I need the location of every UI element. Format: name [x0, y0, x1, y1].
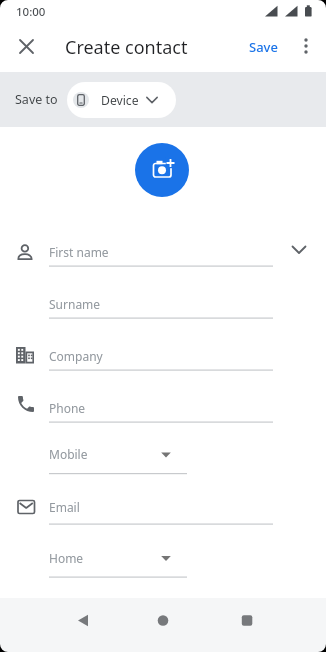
staticText: Company [49, 348, 103, 364]
button[interactable]: Home [45, 540, 190, 576]
staticText: Mobile [49, 446, 88, 462]
button[interactable] [295, 32, 317, 60]
button[interactable]: Device [67, 82, 176, 118]
staticText: 10:00 [16, 4, 46, 20]
button[interactable] [229, 605, 261, 637]
button[interactable] [66, 605, 98, 637]
staticText: Surname [49, 296, 101, 312]
staticText: Save to [15, 91, 58, 108]
staticText: First name [49, 244, 109, 260]
button[interactable]: Company [45, 338, 275, 374]
button[interactable]: Phone [45, 390, 275, 426]
button[interactable] [13, 33, 40, 60]
button[interactable] [147, 605, 179, 637]
staticText: Save [249, 38, 278, 56]
staticText: Phone [49, 400, 86, 416]
button[interactable]: First name [45, 234, 275, 270]
button[interactable] [287, 236, 313, 262]
button[interactable]: Save [238, 28, 288, 66]
button[interactable]: Surname [45, 286, 275, 322]
staticText: Create contact [65, 35, 188, 60]
button[interactable]: Mobile [45, 436, 190, 472]
staticText: Device [101, 92, 139, 109]
staticText: Email [49, 499, 80, 515]
button[interactable]: Email [45, 489, 275, 525]
staticText: Home [49, 550, 84, 566]
button[interactable] [135, 143, 189, 197]
